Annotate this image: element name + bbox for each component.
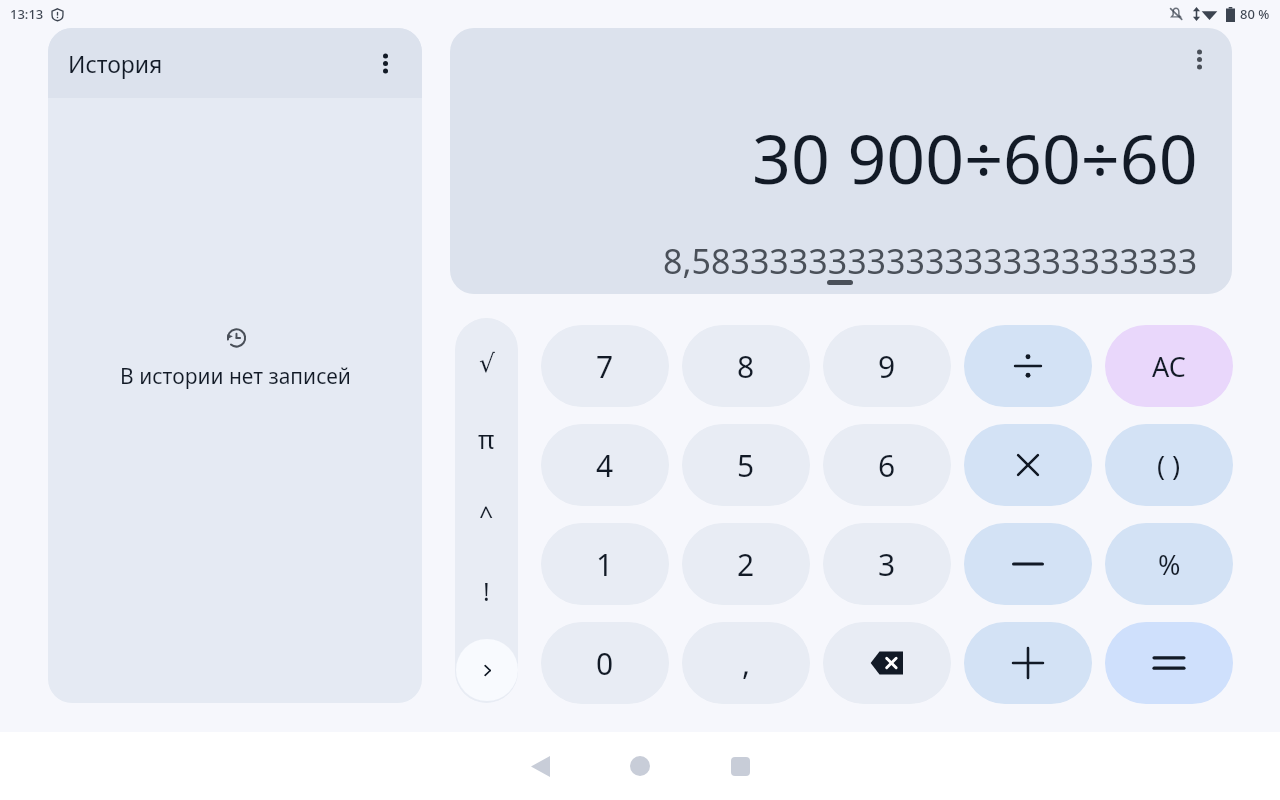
button[interactable] bbox=[964, 622, 1092, 704]
staticText: В истории нет записей bbox=[120, 362, 351, 391]
button[interactable]: Назад bbox=[516, 742, 564, 790]
button[interactable]: 7 bbox=[541, 325, 669, 407]
staticText: 4 bbox=[596, 445, 614, 486]
staticText: 13:13 bbox=[10, 5, 44, 23]
button[interactable]: ^ bbox=[455, 480, 518, 550]
staticText: ( ) bbox=[1157, 447, 1181, 484]
button[interactable]: AC bbox=[1105, 325, 1233, 407]
staticText: 1 bbox=[596, 544, 614, 585]
button[interactable]: % bbox=[1105, 523, 1233, 605]
staticText: 30 900÷60÷60 bbox=[752, 111, 1198, 204]
button[interactable] bbox=[1105, 622, 1233, 704]
staticText: ! bbox=[483, 574, 490, 608]
button[interactable]: √ bbox=[455, 328, 518, 398]
staticText: 6 bbox=[878, 445, 896, 486]
staticText: AC bbox=[1152, 348, 1186, 385]
button[interactable]: 3 bbox=[823, 523, 951, 605]
button[interactable]: π bbox=[455, 404, 518, 474]
button[interactable]: 2 bbox=[682, 523, 810, 605]
button[interactable]: 0 bbox=[541, 622, 669, 704]
staticText: История bbox=[68, 48, 163, 79]
button[interactable] bbox=[964, 523, 1092, 605]
button[interactable]: 4 bbox=[541, 424, 669, 506]
button[interactable]: Удалить bbox=[823, 622, 951, 704]
staticText: , bbox=[742, 643, 751, 684]
button[interactable]: 5 bbox=[682, 424, 810, 506]
button[interactable]: Недавние приложения bbox=[716, 742, 764, 790]
staticText: √ bbox=[479, 349, 495, 378]
button[interactable]: 8 bbox=[682, 325, 810, 407]
button[interactable]: Меню калькулятора bbox=[1180, 40, 1218, 78]
button[interactable]: Меню истории bbox=[368, 46, 402, 80]
button[interactable]: , bbox=[682, 622, 810, 704]
staticText: 0 bbox=[596, 643, 614, 684]
staticText: 5 bbox=[737, 445, 755, 486]
button[interactable]: 9 bbox=[823, 325, 951, 407]
staticText: 9 bbox=[878, 346, 896, 387]
staticText: ^ bbox=[479, 498, 494, 532]
button[interactable]: Главный экран bbox=[616, 742, 664, 790]
staticText: 80 % bbox=[1240, 5, 1270, 23]
button[interactable]: ! bbox=[455, 556, 518, 626]
staticText: % bbox=[1158, 546, 1181, 583]
button[interactable]: 1 bbox=[541, 523, 669, 605]
button[interactable] bbox=[964, 325, 1092, 407]
staticText: 8,58333333333333333333333333 bbox=[663, 238, 1198, 284]
button[interactable] bbox=[964, 424, 1092, 506]
staticText: 8 bbox=[737, 346, 755, 387]
staticText: 7 bbox=[596, 346, 614, 387]
button[interactable]: ( ) bbox=[1105, 424, 1233, 506]
staticText: π bbox=[478, 422, 495, 456]
button[interactable]: 6 bbox=[823, 424, 951, 506]
staticText: 3 bbox=[878, 544, 896, 585]
staticText: 2 bbox=[737, 544, 755, 585]
button[interactable]: Дополнительные функции bbox=[456, 639, 518, 701]
